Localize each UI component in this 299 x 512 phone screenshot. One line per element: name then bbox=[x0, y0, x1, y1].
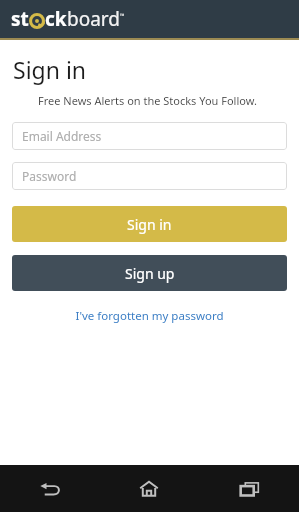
button[interactable]: Home bbox=[99, 465, 199, 512]
staticText: I've forgotten my password bbox=[75, 308, 224, 324]
staticText: ck bbox=[45, 6, 67, 32]
staticText: ™ bbox=[120, 12, 125, 20]
staticText: Password bbox=[22, 168, 77, 184]
button[interactable]: Back bbox=[0, 465, 99, 512]
button[interactable]: Recent apps bbox=[199, 465, 299, 512]
button[interactable]: Sign up bbox=[12, 255, 287, 291]
button[interactable]: Sign in bbox=[12, 206, 287, 242]
staticText: Sign up bbox=[125, 264, 175, 283]
staticText: st bbox=[11, 6, 29, 32]
button[interactable]: I've forgotten my password bbox=[67, 304, 232, 328]
staticText: Email Address bbox=[22, 128, 102, 144]
button[interactable]: Password bbox=[12, 162, 287, 190]
button[interactable]: Email Address bbox=[12, 122, 287, 150]
staticText: Sign in bbox=[13, 54, 87, 85]
staticText: Sign in bbox=[127, 215, 172, 234]
staticText: Free News Alerts on the Stocks You Follo… bbox=[38, 93, 257, 108]
staticText: board bbox=[67, 6, 120, 32]
